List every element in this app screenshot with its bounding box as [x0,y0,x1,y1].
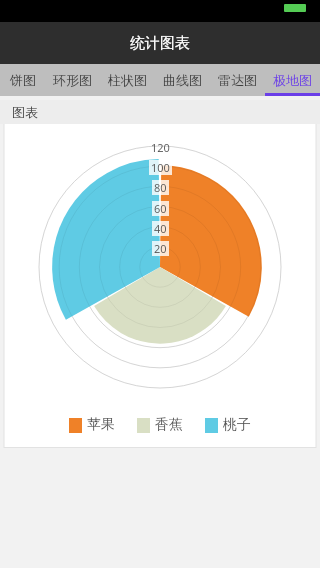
staticText: 曲线图 [163,72,202,88]
button[interactable]: 桃子 [205,416,251,434]
button[interactable]: 雷达图 [210,64,265,96]
button[interactable]: 苹果 [69,416,115,434]
staticText: 统计图表 [130,34,190,53]
staticText: 苹果 [87,416,115,434]
staticText: 桃子 [223,416,251,434]
button[interactable]: 极地图 [265,64,320,96]
staticText: 80 [154,180,167,195]
staticText: 100 [151,160,170,175]
button[interactable]: 曲线图 [155,64,210,96]
staticText: 饼图 [10,72,36,88]
button[interactable]: 香蕉 [137,416,183,434]
staticText: 图表 [12,104,38,120]
staticText: 40 [154,221,167,236]
button[interactable]: 柱状图 [100,64,155,96]
button[interactable]: 环形图 [45,64,100,96]
staticText: 环形图 [53,72,92,88]
button[interactable]: 饼图 [0,64,45,96]
staticText: 120 [151,140,170,155]
staticText: 雷达图 [218,72,257,88]
staticText: 20 [154,241,167,256]
staticText: 60 [154,201,167,216]
staticText: 柱状图 [108,72,147,88]
staticText: 极地图 [273,72,312,88]
staticText: 香蕉 [155,416,183,434]
